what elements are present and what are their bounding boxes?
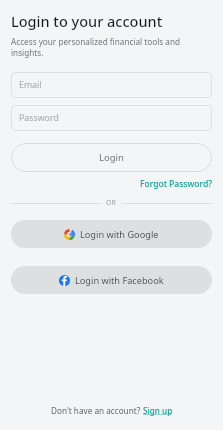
staticText: Access your personalized financial tools… [11,36,212,58]
staticText: OR [106,198,116,208]
staticText: Email [19,79,42,91]
other: Google [64,229,75,240]
button[interactable]: Login [11,143,212,172]
staticText: Forgot Password? [140,178,212,190]
other: Facebook [59,275,70,286]
staticText: Login with Google [80,228,159,241]
button[interactable]: Google [11,220,212,248]
button[interactable]: Password [11,105,212,131]
staticText: Sign up [143,405,173,416]
staticText: Password [19,112,59,124]
staticText: Login [99,151,124,164]
button[interactable]: Facebook [11,266,212,294]
staticText: Login with Facebook [75,274,164,287]
button[interactable]: Forgot Password? [140,178,212,190]
button[interactable]: Sign up [143,405,173,416]
staticText: Login to your account [11,11,163,31]
button[interactable]: Email [11,72,212,98]
staticText: Don't have an account? [51,405,143,416]
